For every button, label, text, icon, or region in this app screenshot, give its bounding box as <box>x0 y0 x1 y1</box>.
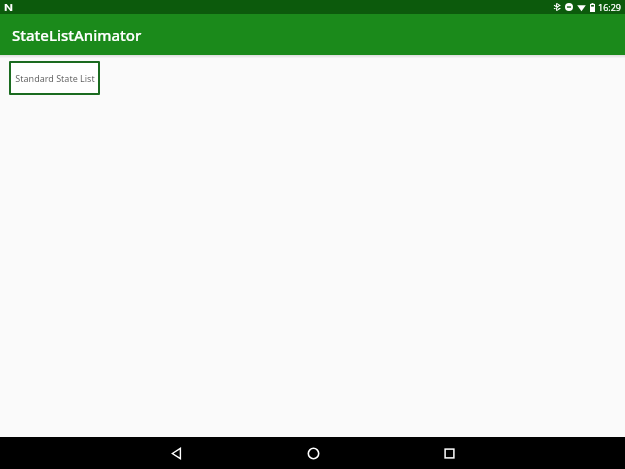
staticText: Standard State List <box>15 72 95 84</box>
button[interactable]: Standard State List <box>9 61 100 95</box>
staticText: 16:29 <box>598 1 622 13</box>
button[interactable]: Home <box>297 437 329 469</box>
staticText: StateListAnimator <box>12 25 142 45</box>
button[interactable]: Recent apps <box>433 437 465 469</box>
button[interactable]: Back <box>160 437 192 469</box>
